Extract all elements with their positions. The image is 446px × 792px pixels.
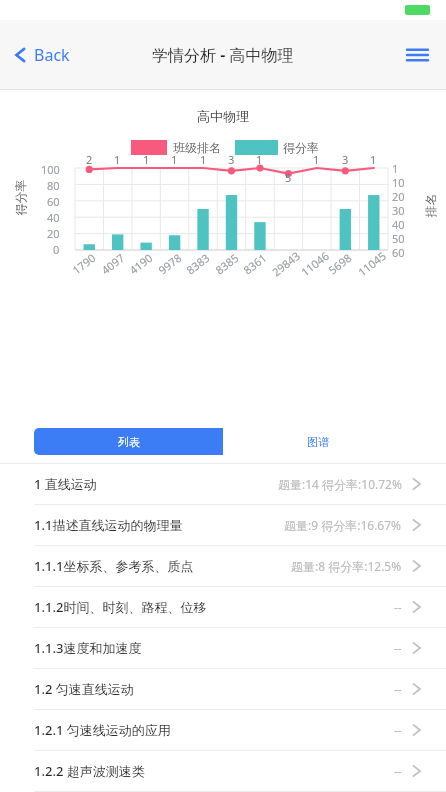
staticText: 1	[392, 161, 399, 175]
staticText: 10	[392, 175, 405, 189]
staticText: 30	[392, 203, 405, 217]
staticText: 1	[171, 152, 178, 167]
staticText: 4190	[126, 250, 156, 277]
staticText: 29843	[269, 248, 303, 279]
staticText: --	[394, 722, 402, 738]
staticText: Back	[34, 44, 70, 66]
staticText: 8385	[212, 250, 242, 277]
staticText: 1	[143, 152, 150, 167]
staticText: 5698	[325, 250, 355, 277]
staticText: 题量:9 得分率:16.67%	[284, 517, 402, 533]
button[interactable]: 图谱	[223, 428, 412, 455]
button[interactable]: 1.2.2 超声波测速类	[0, 751, 446, 792]
staticText: 1	[256, 152, 263, 167]
staticText: 80	[47, 178, 60, 193]
button[interactable]: 1.2 匀速直线运动	[0, 669, 446, 710]
staticText: 1790	[69, 250, 99, 277]
staticText: 20	[392, 189, 405, 203]
staticText: --	[394, 599, 402, 615]
staticText: 0	[53, 242, 60, 257]
staticText: 8361	[240, 250, 270, 277]
staticText: 11046	[298, 248, 332, 279]
button[interactable]: Menu	[397, 38, 438, 72]
staticText: 1	[114, 152, 121, 167]
staticText: 40	[392, 217, 405, 231]
staticText: 8383	[183, 250, 213, 277]
staticText: 40	[47, 210, 60, 225]
staticText: 列表	[118, 435, 140, 449]
staticText: 11045	[355, 248, 389, 279]
staticText: 3	[342, 152, 349, 167]
staticText: 1	[313, 152, 320, 167]
staticText: 班级排名	[173, 140, 221, 155]
button[interactable]: 1.1描述直线运动的物理量	[0, 505, 446, 546]
staticText: 1.1.1坐标系、参考系、质点	[34, 557, 194, 575]
staticText: --	[394, 763, 402, 779]
staticText: 图谱	[307, 435, 329, 449]
staticText: --	[394, 640, 402, 656]
staticText: 60	[47, 194, 60, 209]
staticText: 60	[392, 245, 405, 259]
staticText: 1	[370, 152, 377, 167]
staticText: 100	[41, 162, 60, 177]
button[interactable]: 列表	[34, 428, 223, 455]
staticText: 20	[47, 226, 60, 241]
staticText: 1	[200, 152, 207, 167]
button[interactable]: 1.1.3速度和加速度	[0, 628, 446, 669]
staticText: 1.1描述直线运动的物理量	[34, 516, 183, 534]
staticText: 50	[392, 231, 405, 245]
staticText: 排名	[422, 193, 437, 217]
staticText: 高中物理	[197, 108, 249, 124]
staticText: 1.2.1 匀速线运动的应用	[34, 721, 171, 739]
staticText: 1 直线运动	[34, 475, 97, 493]
staticText: 9978	[155, 250, 185, 277]
staticText: 1.2 匀速直线运动	[34, 680, 134, 698]
staticText: 学情分析 - 高中物理	[152, 44, 294, 66]
staticText: 5	[285, 170, 292, 185]
staticText: 2	[86, 152, 93, 167]
button[interactable]: Back	[8, 38, 76, 72]
staticText: 得分率	[283, 140, 319, 155]
staticText: 题量:14 得分率:10.72%	[278, 476, 402, 492]
button[interactable]: 1.2.1 匀速线运动的应用	[0, 710, 446, 751]
button[interactable]: 1.1.2时间、时刻、路程、位移	[0, 587, 446, 628]
button[interactable]: 1 直线运动	[0, 464, 446, 505]
staticText: 得分率	[12, 179, 27, 215]
staticText: 1.1.2时间、时刻、路程、位移	[34, 598, 207, 616]
staticText: 1.1.3速度和加速度	[34, 639, 142, 657]
staticText: 3	[228, 152, 235, 167]
button[interactable]: 1.1.1坐标系、参考系、质点	[0, 546, 446, 587]
staticText: 题量:8 得分率:12.5%	[291, 558, 402, 574]
staticText: --	[394, 681, 402, 697]
staticText: 1.2.2 超声波测速类	[34, 762, 145, 780]
staticText: 4097	[98, 250, 128, 277]
